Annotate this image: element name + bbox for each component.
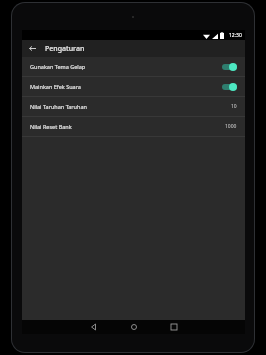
staticText: 10 [231, 103, 237, 110]
staticText: Mainkan Efek Suara [30, 83, 222, 90]
button[interactable]: Mainkan Efek Suara [22, 77, 245, 96]
staticText: 12:30 [229, 32, 242, 39]
staticText: Pengaturan [45, 44, 85, 54]
staticText: 1000 [225, 123, 237, 130]
staticText: Gunakan Tema Gelap [30, 63, 222, 70]
button[interactable]: Home [114, 320, 154, 334]
button[interactable]: Nilai Taruhan Taruhan [22, 97, 245, 116]
button[interactable]: Recent apps [154, 320, 194, 334]
staticText: Nilai Reset Bank [30, 123, 225, 130]
button[interactable]: Gunakan Tema Gelap [22, 57, 245, 76]
button[interactable]: Back [74, 320, 114, 334]
staticText: Nilai Taruhan Taruhan [30, 103, 231, 110]
button[interactable]: Back [26, 42, 39, 55]
button[interactable]: Nilai Reset Bank [22, 117, 245, 136]
